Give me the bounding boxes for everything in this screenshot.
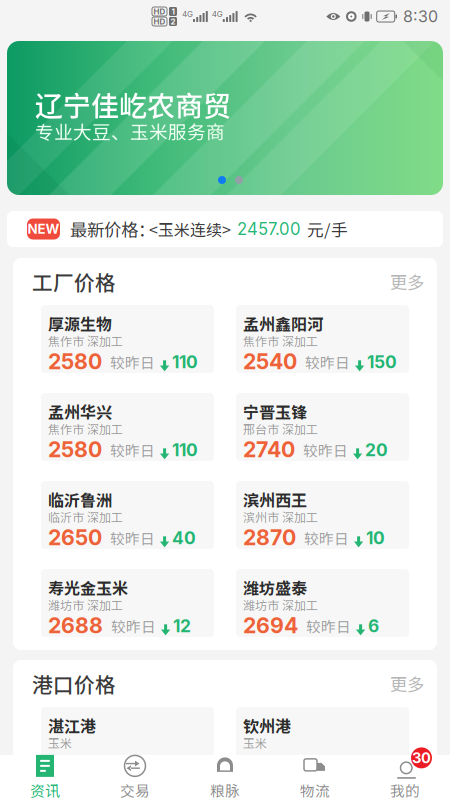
staticText: 较昨日 [306, 615, 351, 636]
staticText: 粮脉 [210, 779, 240, 800]
staticText: 较昨日 [304, 527, 349, 548]
staticText: 焦作市 深加工 [48, 332, 123, 350]
staticText: 临沂鲁洲 [48, 488, 112, 511]
staticText: 10 [366, 527, 385, 548]
staticText: 焦作市 深加工 [243, 332, 318, 350]
staticText: HD [153, 7, 165, 16]
staticText: 2870 [243, 524, 296, 550]
staticText: 4G [182, 9, 193, 19]
staticText: 潍坊盛泰 [243, 576, 307, 599]
staticText: 20 [365, 439, 388, 460]
staticText: 4G [212, 9, 223, 19]
staticText: 工厂价格 [32, 266, 116, 296]
staticText: 我的 [390, 779, 420, 800]
button[interactable]: 更多 [390, 671, 437, 696]
staticText: 2740 [243, 436, 295, 462]
button[interactable]: 寿光金玉米 [41, 569, 214, 637]
staticText: 2700 [243, 750, 296, 776]
staticText: 6 [368, 615, 379, 636]
staticText: 2688 [48, 612, 103, 638]
staticText: 110 [172, 351, 198, 372]
staticText: 交易 [120, 779, 150, 800]
staticText: 2 [170, 17, 175, 26]
button[interactable]: 30 [360, 754, 450, 800]
staticText: 更多 [390, 671, 424, 696]
staticText: 辽宁佳屹农商贸 [35, 84, 231, 124]
staticText: 厚源生物 [48, 312, 112, 335]
staticText: 较昨日 [110, 439, 155, 460]
staticText: 元/手 [307, 217, 348, 241]
staticText: 2580 [48, 348, 102, 374]
button[interactable]: 宁晋玉锋 [236, 393, 409, 461]
staticText: 玉米 [48, 734, 72, 752]
staticText: HD [153, 17, 165, 26]
button[interactable]: 孟州鑫阳河 [236, 305, 409, 373]
staticText: 30 [412, 749, 431, 767]
button[interactable]: 交易 [90, 754, 180, 800]
staticText: 2580 [48, 436, 102, 462]
staticText: 2694 [243, 612, 298, 638]
staticText: 较昨日 [303, 439, 348, 460]
staticText: 邢台市 深加工 [243, 420, 318, 438]
staticText: 资讯 [30, 779, 60, 800]
staticText: NEW [27, 221, 59, 237]
staticText: 寿光金玉米 [48, 576, 128, 599]
button[interactable]: 潍坊盛泰 [236, 569, 409, 637]
staticText: 物流 [300, 779, 330, 800]
staticText: 1 [171, 7, 174, 16]
staticText: 较昨日 [110, 351, 155, 372]
staticText: 潍坊市 深加工 [243, 596, 318, 614]
staticText: 宁晋玉锋 [243, 400, 307, 423]
staticText: 2540 [243, 348, 297, 374]
staticText: 焦作市 深加工 [48, 420, 123, 438]
staticText: 较昨日 [110, 527, 155, 548]
staticText: 玉米 [243, 734, 267, 752]
button[interactable]: 临沂鲁洲 [41, 481, 214, 549]
staticText: 较昨日 [305, 351, 350, 372]
staticText: 2457.00 [237, 219, 301, 239]
button[interactable]: 湛江港 [41, 707, 214, 775]
staticText: 最新价格： [70, 216, 155, 242]
button[interactable]: NEW [7, 211, 443, 247]
staticText: 临沂市 深加工 [48, 508, 123, 526]
staticText: 港口价格 [32, 668, 116, 698]
staticText: 110 [172, 439, 198, 460]
staticText: 滨州西王 [243, 488, 307, 511]
button[interactable]: 更多 [390, 269, 437, 294]
staticText: 湛江港 [48, 714, 96, 737]
staticText: 孟州鑫阳河 [243, 312, 323, 335]
button[interactable]: 厚源生物 [41, 305, 214, 373]
staticText: 潍坊市 深加工 [48, 596, 123, 614]
staticText: 较昨日 [111, 615, 156, 636]
staticText: 150 [367, 351, 397, 372]
staticText: 更多 [390, 269, 424, 294]
button[interactable]: 孟州华兴 [41, 393, 214, 461]
button[interactable]: 滨州西王 [236, 481, 409, 549]
button[interactable]: 钦州港 [236, 707, 409, 775]
button[interactable]: 粮脉 [180, 754, 270, 800]
staticText: 滨州市 深加工 [243, 508, 318, 526]
button[interactable]: 物流 [270, 754, 360, 800]
staticText: 12 [173, 615, 191, 636]
staticText: 较昨日 [110, 753, 155, 774]
staticText: 2850 [48, 750, 102, 776]
staticText: <玉米连续> [149, 217, 231, 241]
staticText: 专业大豆、玉米服务商 [35, 117, 225, 144]
staticText: 孟州华兴 [48, 400, 112, 423]
staticText: 8:30 [403, 7, 438, 26]
button[interactable]: 资讯 [0, 754, 90, 800]
staticText: 2650 [48, 524, 102, 550]
staticText: 钦州港 [243, 714, 291, 737]
staticText: 较昨日 [304, 753, 349, 774]
staticText: 40 [172, 527, 196, 548]
